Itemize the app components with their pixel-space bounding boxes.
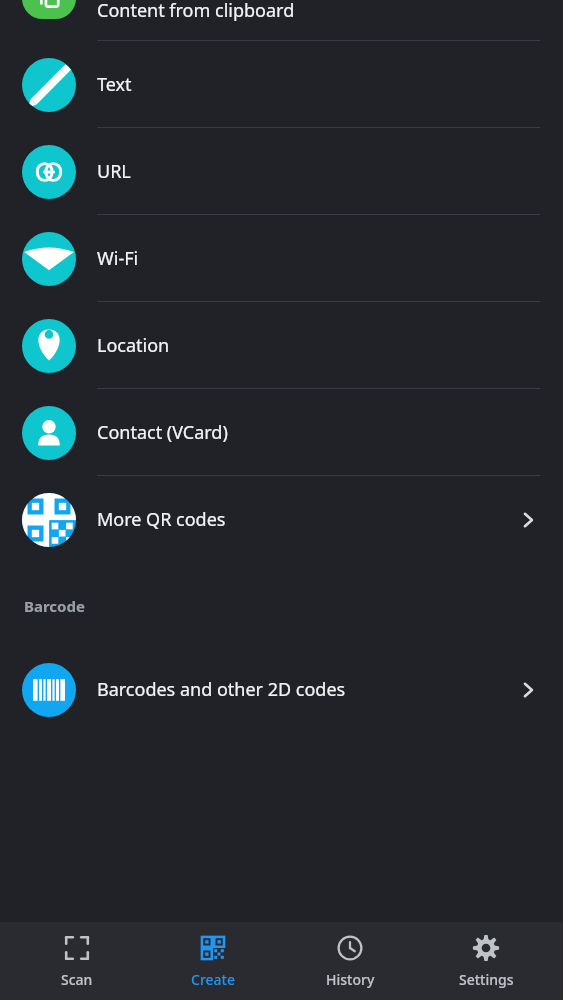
staticText: Wi-Fi	[97, 246, 139, 271]
staticText: Text	[97, 72, 132, 97]
staticText: Contact (VCard)	[97, 420, 228, 445]
button[interactable]: Scan	[17, 922, 137, 1000]
staticText: Scan	[61, 970, 93, 989]
staticText: Create	[191, 970, 235, 989]
button[interactable]: URL	[0, 128, 563, 215]
staticText: Barcodes and other 2D codes	[97, 677, 346, 702]
staticText: Content from clipboard	[97, 0, 295, 23]
button[interactable]: More QR codes	[0, 476, 563, 563]
button[interactable]: Create	[153, 922, 273, 1000]
staticText: Barcode	[24, 596, 85, 616]
button[interactable]: Content from clipboard	[0, 0, 563, 41]
button[interactable]: History	[290, 922, 410, 1000]
staticText: Settings	[459, 970, 514, 989]
staticText: Location	[97, 333, 170, 358]
button[interactable]: Barcodes and other 2D codes	[0, 646, 563, 733]
button[interactable]: Text	[0, 41, 563, 128]
button[interactable]: Settings	[426, 922, 546, 1000]
staticText: URL	[97, 159, 131, 184]
button[interactable]: Contact (VCard)	[0, 389, 563, 476]
button[interactable]: Location	[0, 302, 563, 389]
staticText: History	[326, 970, 375, 989]
button[interactable]: Wi-Fi	[0, 215, 563, 302]
staticText: More QR codes	[97, 507, 226, 532]
